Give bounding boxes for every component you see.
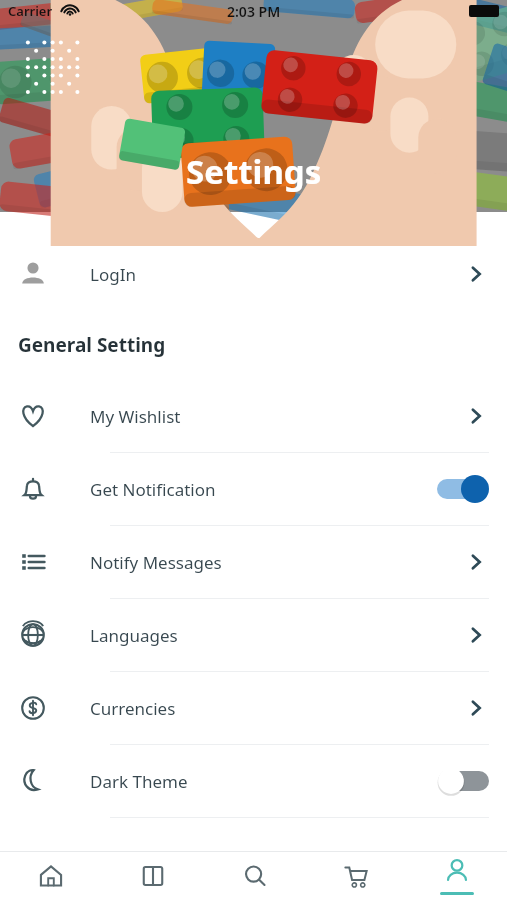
button[interactable]: Get Notification xyxy=(0,452,507,525)
button[interactable]: Account xyxy=(406,852,507,900)
staticText: Notify Messages xyxy=(90,551,463,574)
other: Open xyxy=(463,549,489,575)
staticText: Currencies xyxy=(90,697,463,720)
staticText: Dark Theme xyxy=(90,770,437,793)
staticText: LogIn xyxy=(90,263,463,286)
other: Open xyxy=(463,403,489,429)
button[interactable]: Dark Theme off xyxy=(437,766,489,796)
other: Open xyxy=(463,261,489,287)
button[interactable]: My Wishlist xyxy=(0,380,507,452)
staticText: Languages xyxy=(90,624,463,647)
button[interactable]: Search xyxy=(204,852,305,900)
staticText: 2:03 PM xyxy=(227,2,281,21)
button[interactable]: Notify Messages xyxy=(0,525,507,598)
button[interactable]: Dark Theme xyxy=(0,744,507,817)
button[interactable]: Currencies xyxy=(0,671,507,744)
staticText: Get Notification xyxy=(90,478,437,501)
staticText: Carrier xyxy=(8,2,53,20)
staticText: My Wishlist xyxy=(90,405,463,428)
other: Open xyxy=(463,622,489,648)
button[interactable]: Languages xyxy=(0,598,507,671)
button[interactable]: LogIn xyxy=(0,238,507,310)
staticText: General Setting xyxy=(18,332,166,358)
other: Open xyxy=(463,695,489,721)
button[interactable]: Get Notification on xyxy=(437,474,489,504)
button[interactable]: Home xyxy=(0,852,102,900)
staticText: Settings xyxy=(186,149,322,194)
button[interactable]: Catalog xyxy=(102,852,204,900)
button[interactable]: Cart xyxy=(305,852,406,900)
